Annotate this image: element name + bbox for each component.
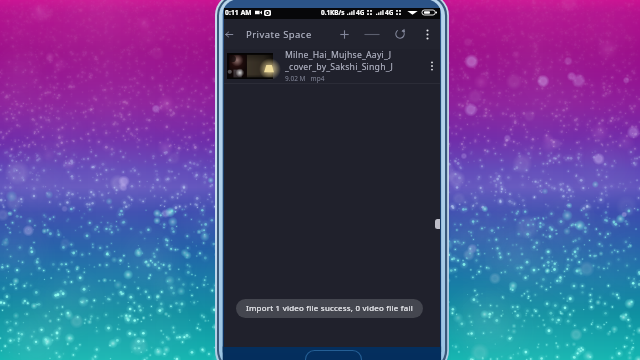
staticText: 9.02 M mp4 bbox=[285, 74, 325, 83]
button[interactable]: Back bbox=[218, 19, 239, 49]
staticText: Import 1 video file success, 0 video fil… bbox=[246, 303, 414, 314]
staticText: 4G bbox=[385, 8, 394, 17]
button[interactable]: Item options bbox=[423, 49, 440, 83]
button[interactable]: Add bbox=[331, 19, 357, 49]
button[interactable]: More options bbox=[414, 19, 440, 49]
staticText: 0:11 AM bbox=[225, 8, 252, 17]
staticText: Milne_Hai_Mujhse_Aayi_J bbox=[285, 49, 392, 61]
staticText: _cover_by_Sakshi_Singh_J bbox=[285, 61, 394, 73]
staticText: 0.1KB/s bbox=[321, 8, 345, 17]
button[interactable]: Refresh bbox=[387, 19, 413, 49]
staticText: Private Space bbox=[246, 28, 312, 41]
button[interactable]: Milne_Hai_Mujhse_Aayi_J bbox=[224, 49, 440, 84]
staticText: 4G bbox=[356, 8, 365, 17]
button[interactable]: Remove bbox=[358, 19, 385, 49]
